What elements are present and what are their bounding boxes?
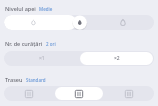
staticText: Medie	[39, 6, 53, 12]
button[interactable]: ×2	[80, 52, 153, 65]
button[interactable]: Route pattern 1	[5, 87, 53, 100]
staticText: Traseu	[5, 76, 23, 83]
button[interactable]: Water level	[4, 15, 154, 30]
staticText: Nr. de curățări	[5, 40, 43, 47]
staticText: 2 ori	[46, 41, 56, 47]
staticText: ×2	[114, 55, 120, 62]
staticText: Nivelul apei	[5, 5, 36, 12]
button[interactable]: Route pattern 3	[105, 87, 153, 100]
staticText: ×1	[39, 55, 45, 62]
staticText: Standard	[26, 77, 46, 83]
button[interactable]: Route pattern 2	[55, 87, 103, 100]
